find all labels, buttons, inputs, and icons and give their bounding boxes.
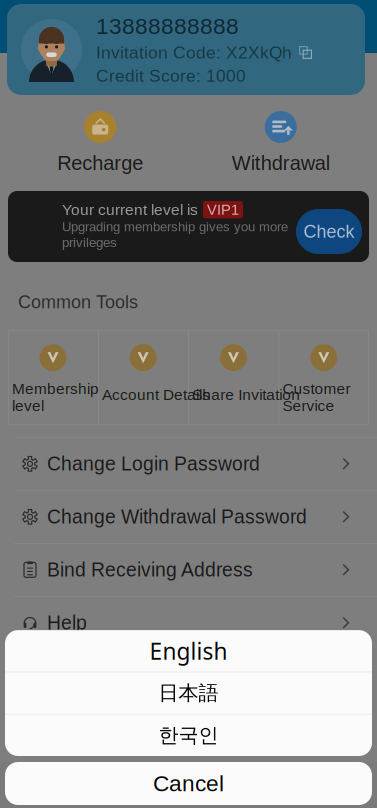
button[interactable]: Home bbox=[0, 762, 75, 808]
button[interactable]: Check bbox=[296, 209, 362, 254]
staticText: 한국인 bbox=[158, 723, 218, 748]
staticText: Membership level bbox=[12, 380, 99, 414]
button[interactable]: Account Details bbox=[98, 330, 188, 425]
staticText: Starting bbox=[166, 788, 211, 803]
staticText: Credit Score: 1000 bbox=[96, 66, 246, 86]
button[interactable]: Share Invitation bbox=[188, 330, 279, 425]
button[interactable]: Recharge bbox=[10, 95, 190, 191]
staticText: Recharge bbox=[57, 152, 143, 174]
button[interactable]: Starting bbox=[151, 762, 226, 808]
button[interactable]: Cancel bbox=[5, 762, 372, 805]
staticText: Cancel bbox=[153, 771, 224, 796]
button[interactable]: Help bbox=[0, 597, 377, 649]
button[interactable]: Change Login Password bbox=[0, 438, 377, 490]
button[interactable]: Customer Service bbox=[279, 330, 369, 425]
staticText: Change Withdrawal Password bbox=[47, 506, 307, 528]
staticText: Bind Receiving Address bbox=[47, 559, 253, 581]
staticText: privileges bbox=[62, 235, 117, 250]
staticText: Customer Service bbox=[283, 380, 351, 414]
staticText: Help bbox=[47, 612, 87, 634]
button[interactable]: Membership level bbox=[8, 330, 98, 425]
staticText: Change Login Password bbox=[47, 453, 260, 475]
staticText: Upgrading membership gives you more bbox=[62, 219, 288, 234]
staticText: Check bbox=[303, 221, 354, 241]
staticText: Common Tools bbox=[18, 292, 138, 312]
button[interactable]: 한국인 bbox=[5, 714, 372, 756]
button[interactable]: Invite bbox=[75, 762, 151, 808]
button[interactable]: Bind Receiving Address bbox=[0, 544, 377, 596]
button[interactable]: 日本語 bbox=[5, 672, 372, 714]
button[interactable]: Change Withdrawal Password bbox=[0, 491, 377, 543]
staticText: Share Invitation bbox=[192, 386, 300, 403]
staticText: 日本語 bbox=[158, 681, 218, 705]
staticText: English bbox=[149, 636, 227, 666]
staticText: 13888888888 bbox=[96, 13, 239, 39]
button[interactable]: Center bbox=[302, 762, 377, 808]
staticText: VIP1 bbox=[207, 201, 239, 218]
button[interactable]: English bbox=[5, 630, 372, 672]
button[interactable]: History bbox=[226, 762, 302, 808]
staticText: Your current level is bbox=[62, 201, 198, 218]
button[interactable]: Withdrawal bbox=[190, 95, 371, 191]
staticText: Account Details bbox=[102, 386, 210, 403]
staticText: Withdrawal bbox=[232, 152, 330, 174]
staticText: Invitation Code: X2XkQh bbox=[96, 43, 292, 62]
